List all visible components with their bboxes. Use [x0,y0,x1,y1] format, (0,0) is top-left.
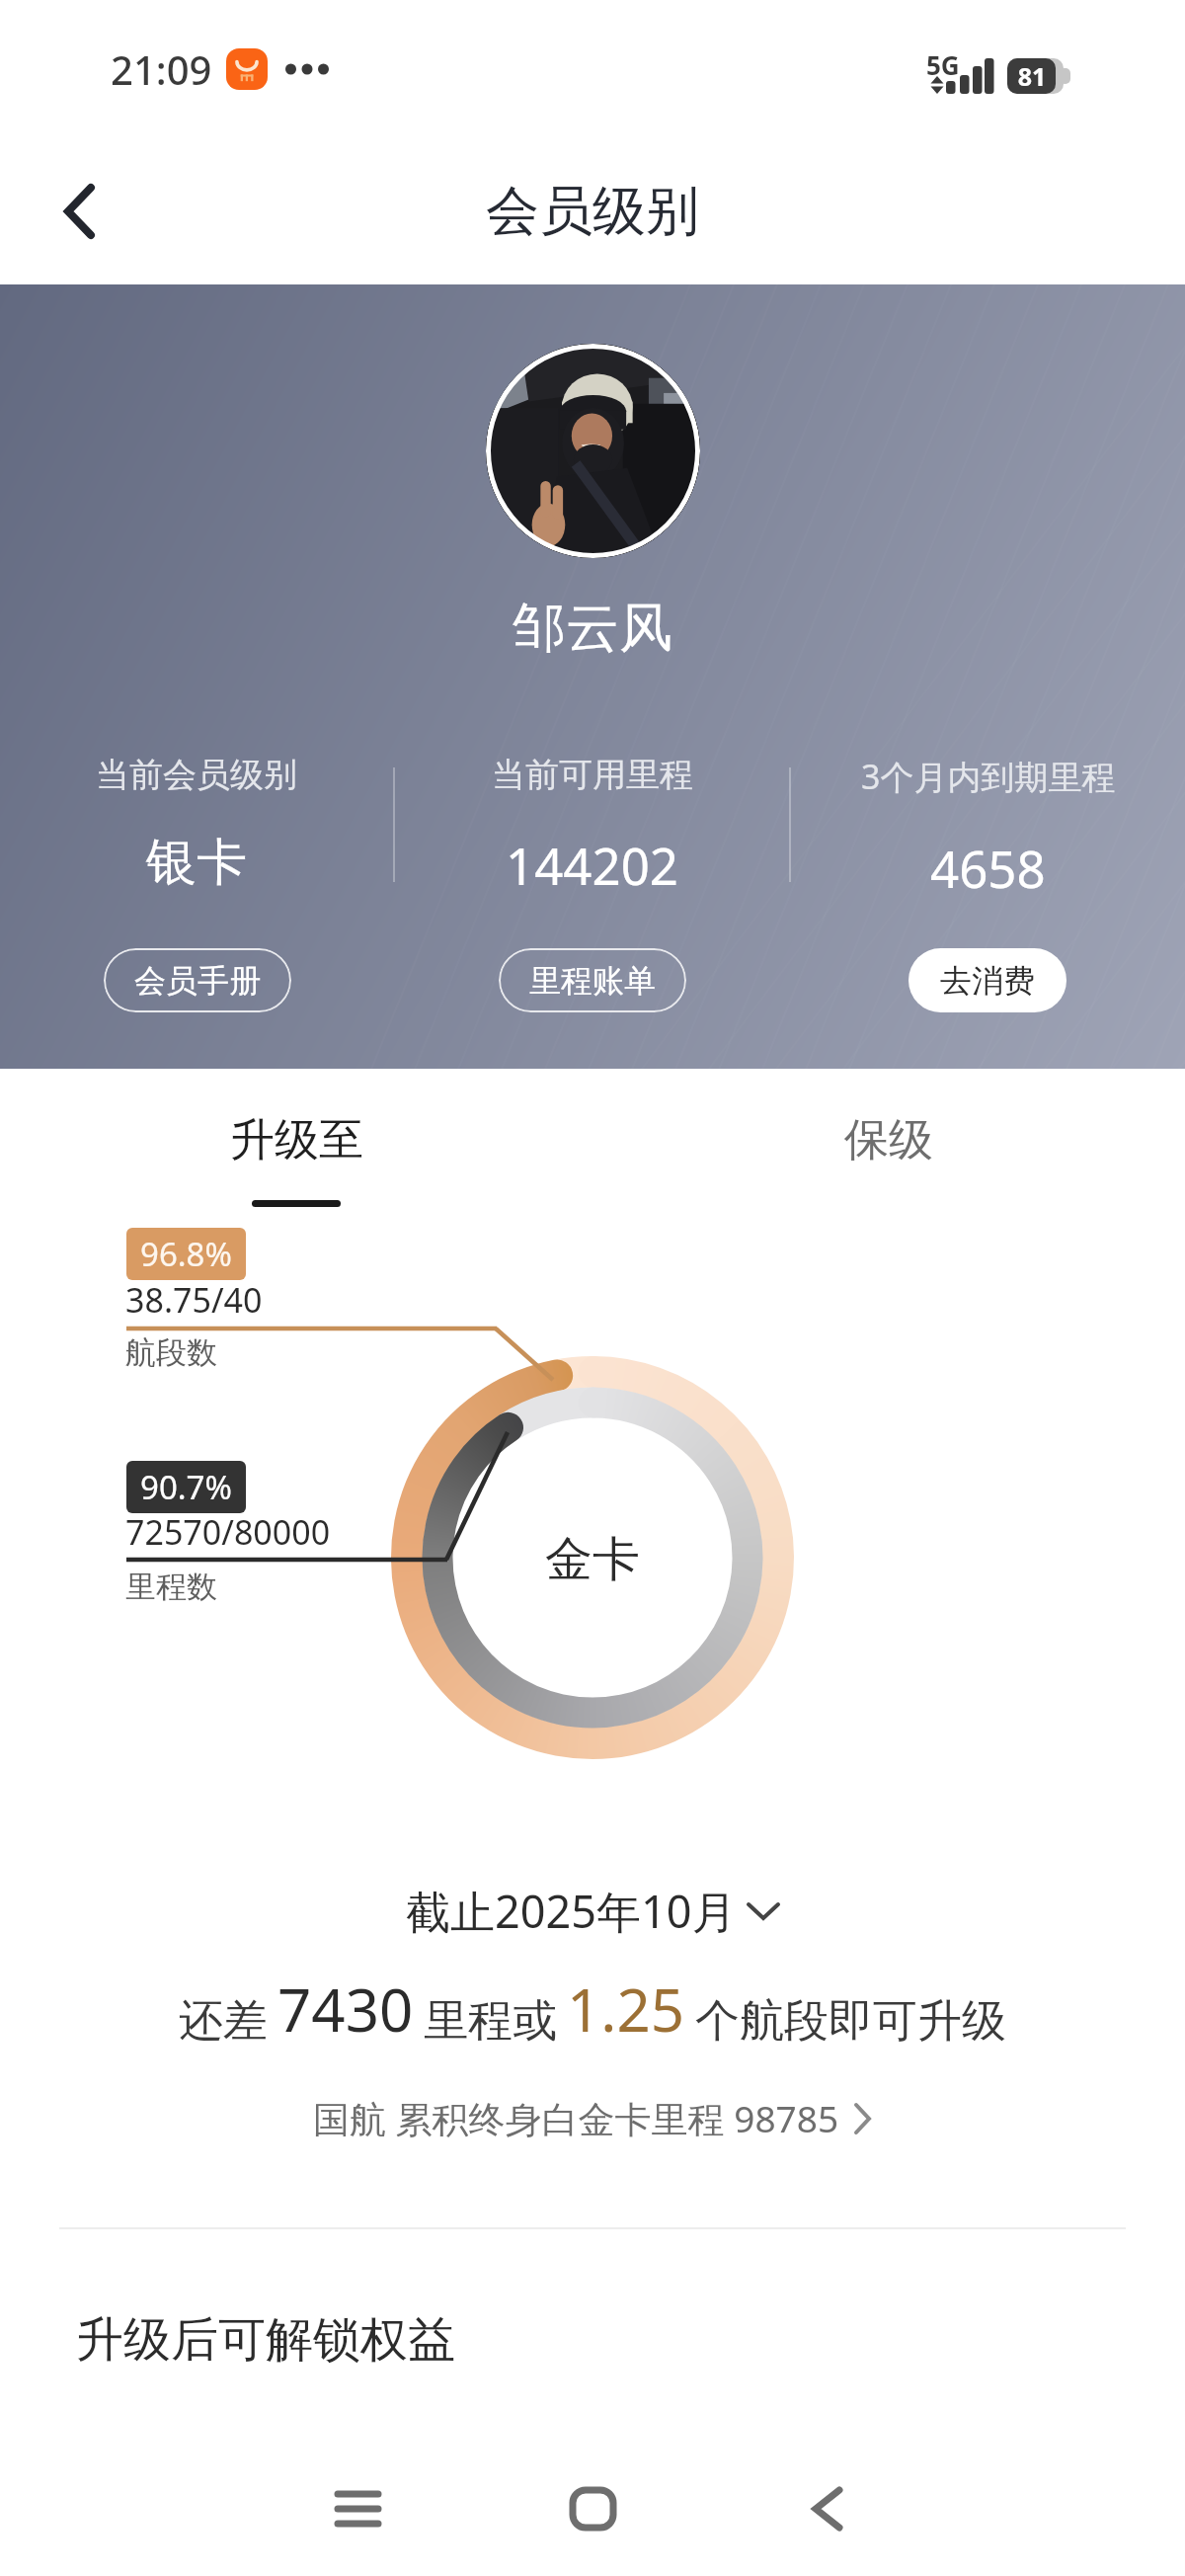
staticText: 里程或 [424,1993,557,2050]
staticText: 国航 累积终身白金卡里程 98785 [313,2093,839,2143]
staticText: 会员手册 [134,961,261,1001]
staticText: 72570/80000 [125,1509,331,1555]
staticText: 截止2025年10月 [406,1881,737,1941]
button[interactable]: Back [36,168,122,255]
staticText: 航段数 [125,1333,217,1372]
staticText: 升级后可解锁权益 [76,2310,455,2370]
staticText: 保级 [844,1112,933,1168]
staticText: 96.8% [140,1232,232,1276]
button[interactable]: 会员手册 [104,948,291,1012]
button[interactable]: Recent apps [299,2451,416,2567]
button[interactable]: 去消费 [908,948,1066,1012]
button[interactable]: 里程账单 [499,948,686,1012]
staticText: 90.7% [140,1465,232,1509]
button[interactable]: 国航 累积终身白金卡里程 98785 [313,2093,872,2143]
staticText: 5G [926,47,960,82]
staticText: 4658 [930,834,1046,902]
staticText: 里程数 [125,1568,217,1606]
button[interactable]: 截止2025年10月 [406,1881,780,1941]
staticText: 3个月内到期里程 [861,754,1116,799]
button[interactable]: 升级至 [0,1069,592,1201]
staticText: 当前可用里程 [492,754,693,796]
staticText: 144202 [506,831,679,899]
staticText: 7430 [277,1969,414,2050]
staticText: 21:09 [111,42,212,96]
staticText: 金卡 [545,1530,640,1589]
staticText: 81 [1007,59,1057,93]
staticText: 里程账单 [529,961,656,1001]
staticText: 去消费 [940,961,1035,1001]
staticText: 会员级别 [486,178,699,245]
staticText: 邹云风 [513,595,672,662]
staticText: 个航段即可升级 [695,1993,1006,2050]
button[interactable]: Home [534,2451,651,2567]
staticText: 38.75/40 [125,1277,263,1323]
staticText: 1.25 [567,1969,685,2050]
staticText: 还差 [179,1993,268,2050]
staticText: 升级至 [230,1112,363,1168]
staticText: 当前会员级别 [96,754,297,796]
button[interactable]: Back [769,2451,886,2567]
button[interactable]: 保级 [592,1069,1185,1201]
staticText: 银卡 [146,831,247,894]
